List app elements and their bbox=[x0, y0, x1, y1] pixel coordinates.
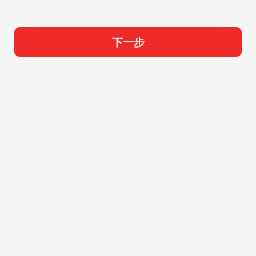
button[interactable]: 下一步 bbox=[14, 27, 242, 57]
staticText: 下一步 bbox=[112, 35, 145, 49]
